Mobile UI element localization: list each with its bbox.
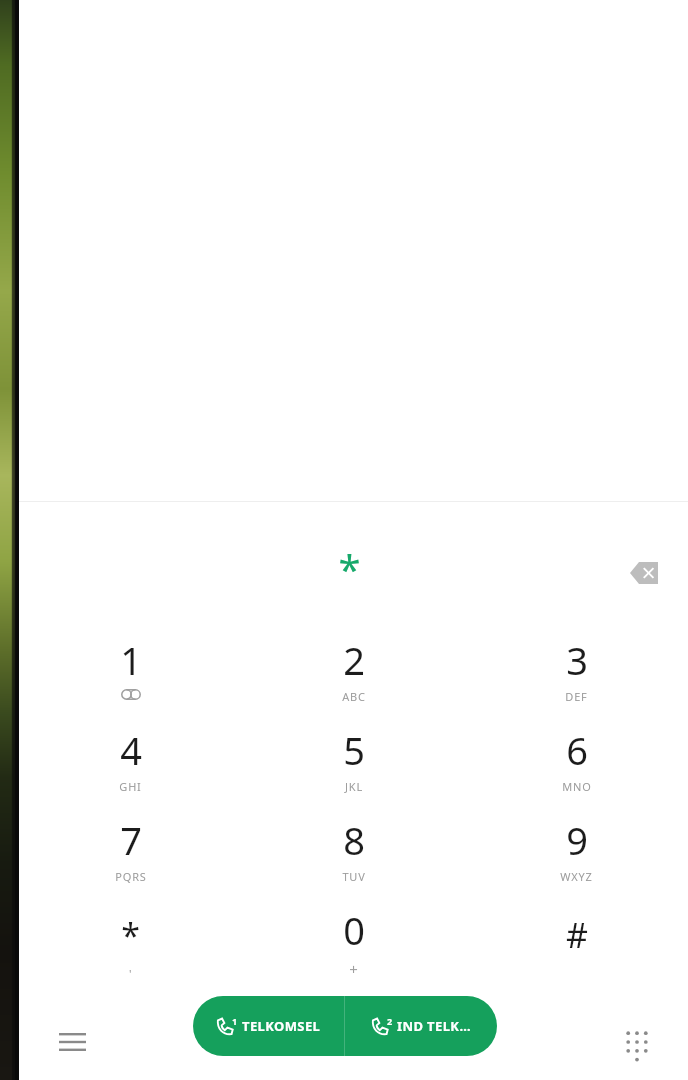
staticText: * xyxy=(121,912,140,958)
staticText: ABC xyxy=(342,689,366,704)
staticText: 3 xyxy=(566,634,588,686)
button[interactable]: # xyxy=(465,898,688,988)
staticText: 5 xyxy=(343,724,365,776)
button[interactable]: 9 xyxy=(465,808,688,898)
button[interactable]: Dialpad xyxy=(610,1015,664,1069)
button[interactable]: Menu xyxy=(45,1015,99,1069)
button[interactable]: 0 xyxy=(242,898,465,988)
staticText: 6 xyxy=(566,724,588,776)
staticText: PQRS xyxy=(115,869,147,884)
staticText: 1 xyxy=(232,1015,238,1027)
staticText: 4 xyxy=(120,724,142,776)
button[interactable]: 4 xyxy=(19,718,242,808)
staticText: IND TELK… xyxy=(397,1017,471,1035)
button[interactable]: 5 xyxy=(242,718,465,808)
button[interactable]: 7 xyxy=(19,808,242,898)
staticText: # xyxy=(566,912,588,958)
staticText: 7 xyxy=(120,814,142,866)
button[interactable]: 2 xyxy=(242,628,465,718)
staticText: WXYZ xyxy=(560,869,593,884)
staticText: 2 xyxy=(387,1015,393,1027)
button[interactable]: * xyxy=(19,898,242,988)
button[interactable]: 3 xyxy=(465,628,688,718)
staticText: TELKOMSEL xyxy=(242,1017,321,1035)
staticText: + xyxy=(349,959,359,979)
button[interactable]: 1 xyxy=(193,996,344,1056)
staticText: 0 xyxy=(343,904,365,956)
staticText: ' xyxy=(129,966,132,981)
button[interactable]: 8 xyxy=(242,808,465,898)
staticText: 2 xyxy=(343,634,365,686)
button[interactable]: 2 xyxy=(345,996,497,1056)
staticText: 8 xyxy=(343,814,365,866)
staticText: 1 xyxy=(120,634,142,686)
staticText: GHI xyxy=(119,779,142,794)
button[interactable]: 1 xyxy=(19,628,242,718)
button[interactable]: Backspace xyxy=(619,547,671,599)
staticText: DEF xyxy=(565,689,588,704)
staticText: JKL xyxy=(345,779,363,794)
staticText: 9 xyxy=(566,814,588,866)
staticText: * xyxy=(338,541,361,595)
staticText: MNO xyxy=(562,779,592,794)
staticText: TUV xyxy=(342,869,366,884)
button[interactable]: 6 xyxy=(465,718,688,808)
